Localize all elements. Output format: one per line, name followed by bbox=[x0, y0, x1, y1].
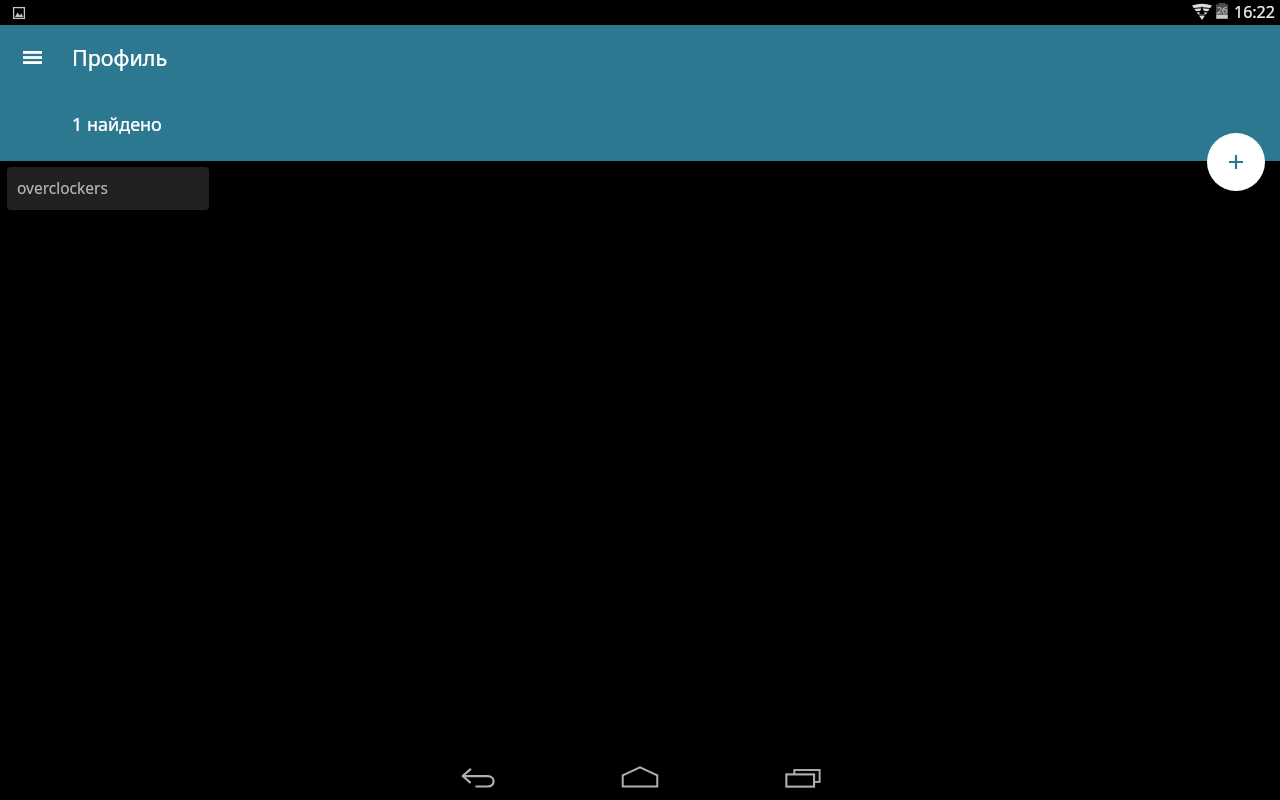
button[interactable]: Recents bbox=[763, 754, 843, 800]
button[interactable]: overclockers bbox=[7, 167, 209, 210]
button[interactable]: Back bbox=[438, 754, 518, 800]
staticText: Профиль bbox=[72, 43, 168, 72]
staticText: overclockers bbox=[17, 177, 108, 198]
button[interactable]: Add bbox=[1207, 133, 1265, 191]
staticText: 1 найдено bbox=[72, 112, 162, 137]
button[interactable]: Menu bbox=[15, 40, 49, 74]
button[interactable]: Home bbox=[600, 753, 680, 800]
staticText: 16:22 bbox=[1234, 1, 1275, 23]
